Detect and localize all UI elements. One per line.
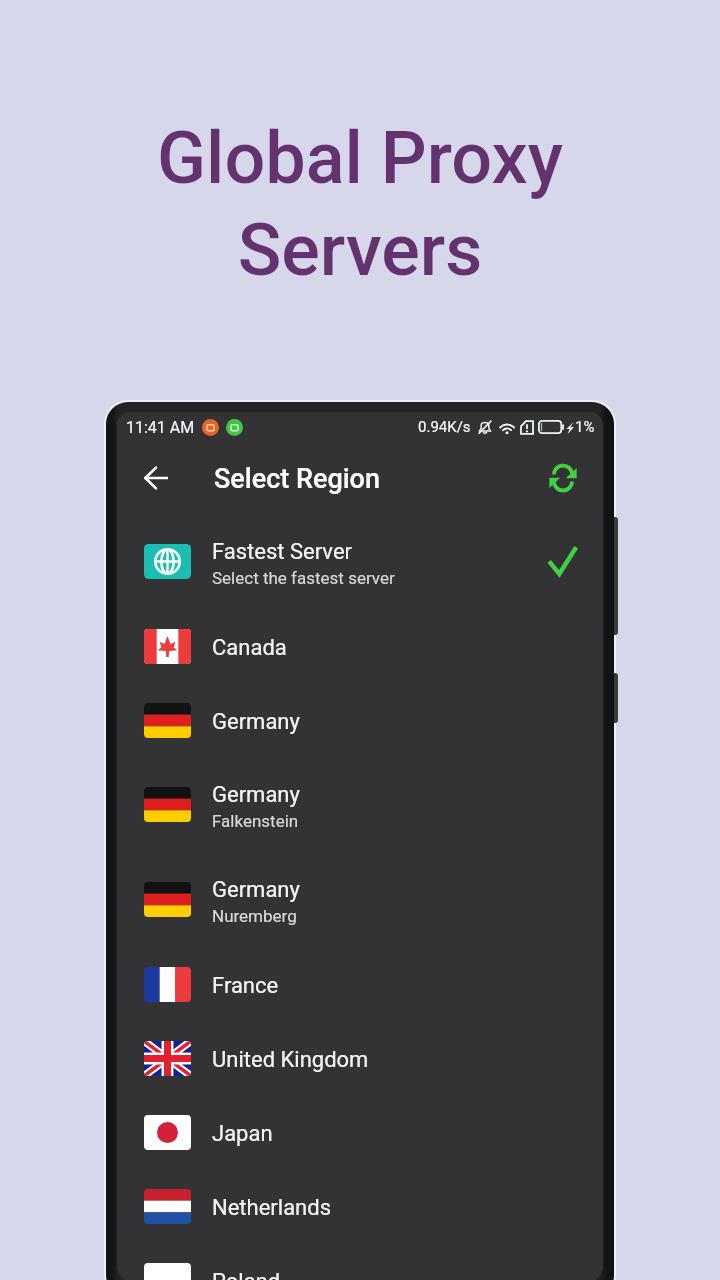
button[interactable]: Canada <box>117 609 603 683</box>
staticText: Select the fastest server <box>212 568 395 588</box>
staticText: Netherlands <box>212 1195 332 1221</box>
button[interactable]: Germany <box>117 683 603 757</box>
button[interactable]: Back <box>133 455 179 501</box>
staticText: Global Proxy Servers <box>157 116 563 292</box>
button[interactable]: Japan <box>117 1095 603 1169</box>
staticText: Japan <box>212 1121 273 1147</box>
staticText: Germany <box>212 709 300 735</box>
staticText: Canada <box>212 635 287 661</box>
staticText: Select Region <box>214 463 380 495</box>
button[interactable]: France <box>117 947 603 1021</box>
staticText: United Kingdom <box>212 1047 369 1073</box>
button[interactable]: Germany <box>117 852 603 947</box>
staticText: France <box>212 973 279 999</box>
staticText: Falkenstein <box>212 811 299 831</box>
staticText: 0.94K/s <box>418 418 471 436</box>
button[interactable]: Germany <box>117 757 603 852</box>
button[interactable]: Netherlands <box>117 1169 603 1243</box>
staticText: Germany <box>212 877 300 903</box>
button[interactable]: Fastest Server <box>117 514 603 609</box>
staticText: Fastest Server <box>212 539 353 565</box>
staticText: Germany <box>212 782 300 808</box>
button[interactable]: Refresh <box>540 455 586 501</box>
staticText: Nuremberg <box>212 906 297 926</box>
button[interactable]: United Kingdom <box>117 1021 603 1095</box>
staticText: 1% <box>575 418 595 436</box>
staticText: 11:41 AM <box>126 418 195 437</box>
staticText: Poland <box>212 1269 281 1280</box>
button[interactable]: Poland <box>117 1243 603 1280</box>
